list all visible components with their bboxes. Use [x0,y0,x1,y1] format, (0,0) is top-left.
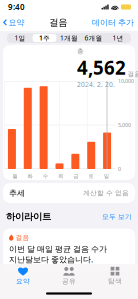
staticText: 2024. 2. 20. [77,80,115,89]
staticText: 요약 [8,18,24,27]
staticText: 걸음 [49,17,67,28]
staticText: 일 [104,173,109,180]
button[interactable]: 추세 [0,183,138,203]
staticText: 화 [27,173,32,180]
staticText: 토 [89,173,94,180]
button[interactable]: 요약 [0,264,46,288]
staticText: 10,000 [118,77,134,85]
staticText: 금 [73,173,78,180]
staticText: 데이터 추가 [92,18,134,27]
button[interactable]: 탐색 [92,264,138,288]
staticText: 5,000 [118,121,131,129]
staticText: 4,562 [77,55,126,80]
button[interactable]: 공유 [46,264,92,288]
button[interactable]: 6개월 [82,34,105,42]
staticText: 0 [118,165,121,173]
button[interactable]: 1년 [106,34,130,42]
staticText: 하이라이트 [6,211,51,222]
staticText: 요약 [16,277,30,285]
staticText: 총 [77,47,84,55]
staticText: 계산할 수 없음 [83,189,129,197]
button[interactable]: 모두 보기 [102,213,132,221]
staticText: 탐색 [108,277,122,285]
button[interactable]: 1주 [33,34,56,42]
staticText: 수 [43,173,48,180]
staticText: 걸음 [127,70,138,78]
button[interactable]: 요약 [0,15,24,30]
staticText: 1주 [39,34,50,42]
staticText: 추세 [9,188,25,198]
staticText: 9:40 [8,2,25,12]
staticText: 목 [58,173,63,180]
button[interactable]: 1일 [8,34,32,42]
staticText: 1일 [14,34,25,42]
button[interactable]: 1개월 [57,34,81,42]
staticText: 이번 달 매일 평균 걸음 수가 지난달보다 좋았습니다. [9,244,107,265]
staticText: 모두 보기 [102,213,132,221]
button[interactable]: 데이터 추가 [92,15,138,30]
staticText: 걸음 [15,233,29,242]
staticText: 1개월 [60,34,78,42]
staticText: 월 [12,173,17,180]
staticText: 6개월 [85,34,103,42]
staticText: 공유 [62,277,76,285]
button[interactable]: 걸음 [0,228,138,271]
staticText: 1년 [113,34,124,42]
